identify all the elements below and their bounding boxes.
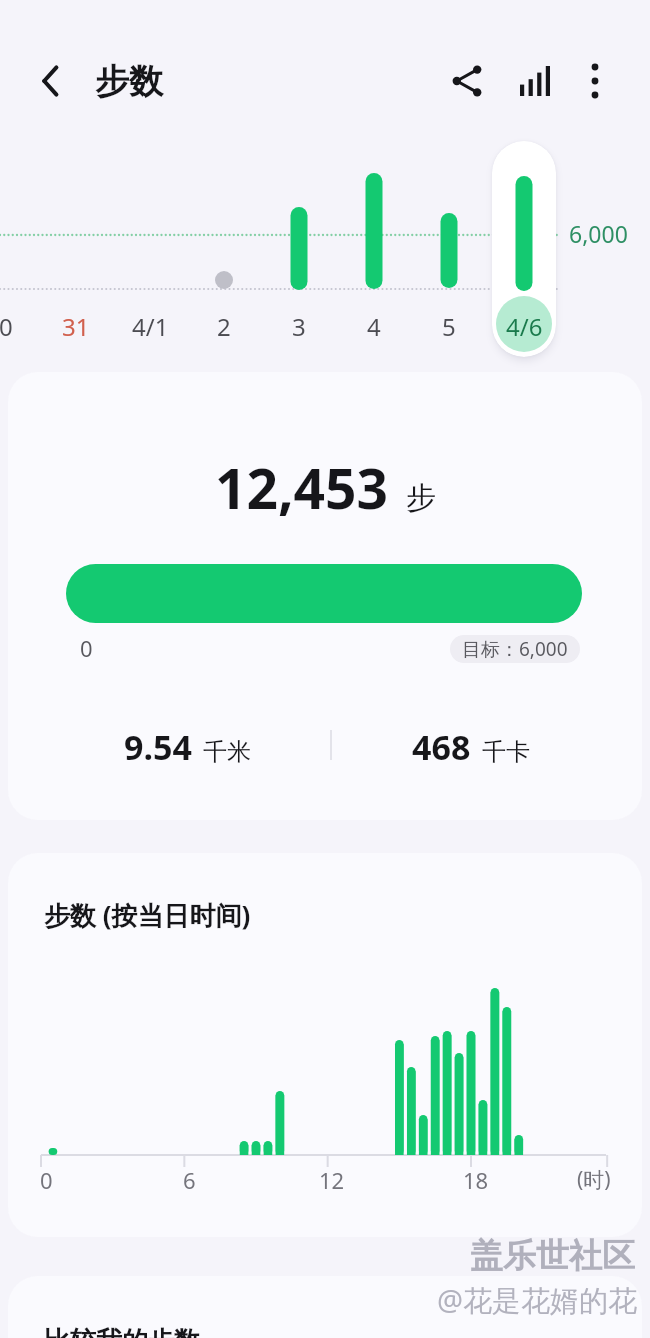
staticText: 0 bbox=[40, 1165, 53, 1195]
staticText: 4 bbox=[367, 310, 381, 343]
staticText: 千米 bbox=[203, 737, 251, 767]
staticText: 比较我的步数 bbox=[44, 1325, 200, 1338]
staticText: 0 bbox=[0, 310, 13, 343]
staticText: 步数 bbox=[95, 60, 163, 103]
button[interactable]: Share bbox=[439, 53, 495, 109]
button[interactable]: Chart view bbox=[506, 53, 562, 109]
staticText: 盖乐世社区 bbox=[470, 1235, 635, 1277]
button[interactable]: More options bbox=[567, 53, 623, 109]
staticText: @花是花婿的花 bbox=[437, 1280, 638, 1320]
staticText: 31 bbox=[62, 310, 90, 343]
staticText: 6,000 bbox=[569, 218, 628, 249]
staticText: 5 bbox=[442, 310, 456, 343]
staticText: (时) bbox=[577, 1165, 611, 1194]
staticText: 12,453 bbox=[215, 450, 388, 525]
staticText: 千卡 bbox=[482, 737, 530, 767]
staticText: 0 bbox=[80, 633, 93, 663]
staticText: 4/1 bbox=[132, 310, 169, 343]
staticText: 18 bbox=[463, 1165, 489, 1195]
button[interactable]: Back bbox=[23, 53, 79, 109]
button[interactable]: April 6 bbox=[492, 141, 556, 357]
staticText: 3 bbox=[292, 310, 306, 343]
staticText: 步 bbox=[406, 479, 436, 517]
button[interactable]: 比较我的步数 bbox=[8, 1276, 642, 1338]
staticText: 目标：6,000 bbox=[462, 636, 568, 662]
staticText: 6 bbox=[183, 1165, 196, 1195]
staticText: 2 bbox=[217, 310, 231, 343]
staticText: 步数 (按当日时间) bbox=[44, 897, 251, 933]
staticText: 12 bbox=[319, 1165, 345, 1195]
staticText: 9.54 bbox=[124, 724, 192, 770]
staticText: 468 bbox=[412, 724, 471, 770]
staticText: 4/6 bbox=[506, 310, 543, 343]
